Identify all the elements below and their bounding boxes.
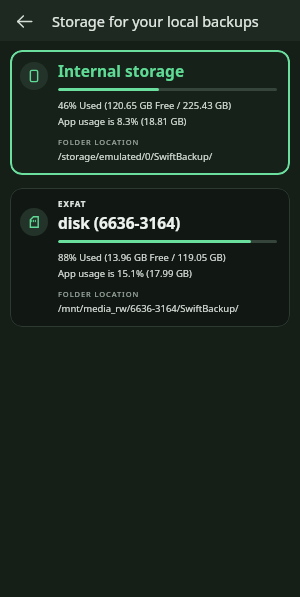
staticText: /mnt/media_rw/6636-3164/SwiftBackup/ [58,302,239,315]
button[interactable]: Back [8,5,40,37]
staticText: EXFAT [58,198,87,209]
staticText: Storage for your local backups [52,11,259,31]
button[interactable]: EXFAT [10,188,290,327]
button[interactable]: Internal storage [10,50,290,175]
staticText: Internal storage [58,60,185,81]
staticText: /storage/emulated/0/SwiftBackup/ [58,150,213,163]
staticText: FOLDER LOCATION [58,289,140,299]
staticText: disk (6636-3164) [58,212,181,233]
staticText: App usage is 15.1% (17.99 GB) [58,267,192,280]
staticText: App usage is 8.3% (18.81 GB) [58,115,187,128]
staticText: FOLDER LOCATION [58,137,140,147]
staticText: 88% Used (13.96 GB Free / 119.05 GB) [58,251,226,264]
staticText: 46% Used (120.65 GB Free / 225.43 GB) [58,99,231,112]
